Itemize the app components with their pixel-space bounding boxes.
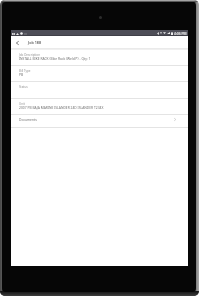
button[interactable]: Documents <box>11 115 188 128</box>
staticText: PB <box>19 72 24 76</box>
staticText: Status <box>19 85 28 89</box>
staticText: Job Description <box>19 53 40 57</box>
staticText: Job 188 <box>28 40 42 45</box>
staticText: Unit <box>19 102 25 106</box>
staticText: INSTALL BIKE RACK (Bike Rack (Weld)*) - … <box>19 56 91 60</box>
button[interactable]: Back <box>11 36 23 49</box>
staticText: 4:06 PM <box>174 31 187 35</box>
staticText: 2007 PB BAJA MARINE ISLANDER 24D ISLANDE… <box>19 105 104 109</box>
staticText: Bill Type <box>19 69 31 73</box>
staticText: Documents <box>19 117 37 121</box>
